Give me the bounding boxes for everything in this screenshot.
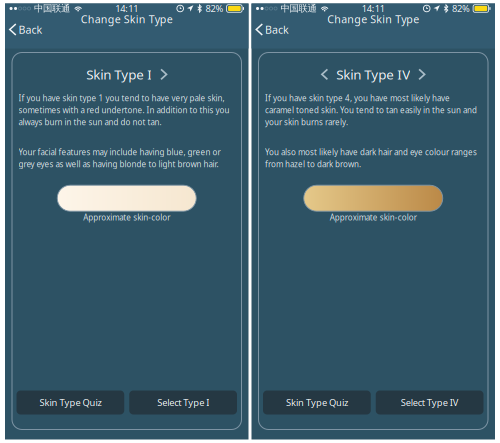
- staticText: Change Skin Type: [327, 12, 419, 26]
- staticText: 中国联通: [34, 3, 70, 14]
- staticText: Skin Type Quiz: [39, 396, 101, 409]
- staticText: Approximate skin-color: [83, 212, 170, 223]
- staticText: Back: [265, 22, 289, 37]
- staticText: Select Type I: [157, 396, 209, 409]
- staticText: If you have skin type 1 you tend to have…: [18, 93, 224, 103]
- staticText: Skin Type I: [86, 65, 152, 83]
- staticText: If you have skin type 4, you have most l…: [265, 93, 450, 103]
- staticText: You also most likely have dark hair and …: [265, 147, 477, 157]
- button[interactable]: Back: [5, 21, 48, 38]
- staticText: Your facial features may include having …: [18, 147, 220, 157]
- staticText: 中国联通: [281, 3, 317, 14]
- button[interactable]: Select Type I: [129, 390, 237, 414]
- button[interactable]: Select Type IV: [376, 390, 484, 414]
- staticText: Back: [19, 22, 43, 37]
- staticText: always burn in the sun and do not tan.: [18, 117, 161, 127]
- staticText: 82%: [206, 2, 224, 15]
- button[interactable]: Skin Type IV: [321, 59, 425, 89]
- staticText: from hazel to dark brown.: [265, 159, 361, 169]
- staticText: Skin Type IV: [336, 65, 410, 83]
- staticText: Skin Type Quiz: [286, 396, 348, 409]
- staticText: sometimes with a red undertone. In addit…: [18, 105, 229, 115]
- button[interactable]: Skin Type Quiz: [16, 390, 124, 414]
- staticText: grey eyes as well as having blonde to li…: [18, 159, 218, 169]
- button[interactable]: Back: [251, 21, 295, 38]
- staticText: 82%: [452, 2, 470, 15]
- staticText: Approximate skin-color: [330, 212, 417, 223]
- staticText: 14:11: [362, 2, 385, 15]
- staticText: Change Skin Type: [81, 12, 173, 26]
- button[interactable]: Skin Type I: [86, 59, 167, 89]
- staticText: 14:11: [115, 2, 138, 15]
- staticText: Select Type IV: [401, 396, 459, 409]
- button[interactable]: Skin Type Quiz: [263, 390, 371, 414]
- staticText: caramel toned skin. You tend to tan easi…: [265, 105, 477, 115]
- staticText: your skin burns rarely.: [265, 117, 348, 127]
